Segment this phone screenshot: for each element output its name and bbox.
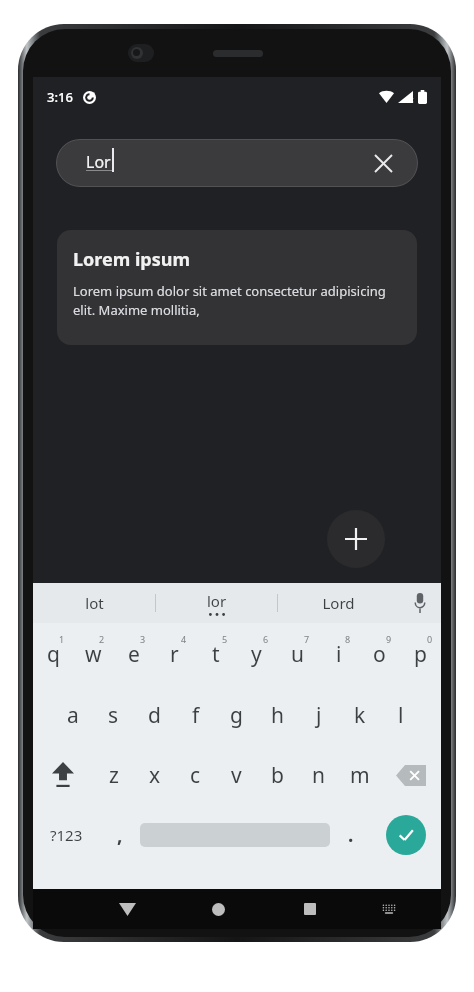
staticText: b [271,761,284,790]
staticText: f [192,701,200,730]
staticText: 1 [59,633,65,645]
staticText: Lor [86,151,111,173]
button[interactable]: f [175,685,216,745]
staticText: v [231,761,242,790]
button[interactable]: Lor [56,139,418,187]
staticText: ?123 [50,825,83,845]
button[interactable]: 4 [154,623,195,685]
button[interactable]: Voice input [399,583,441,623]
staticText: c [190,761,201,790]
staticText: . [348,822,354,848]
staticText: l [398,701,404,730]
button[interactable]: k [339,685,380,745]
button[interactable]: n [298,745,339,805]
staticText: a [67,701,79,730]
button[interactable]: 1 [33,623,73,685]
staticText: t [212,640,220,669]
button[interactable]: 0 [400,623,441,685]
staticText: e [128,640,140,669]
staticText: i [336,640,342,669]
button[interactable]: s [93,685,134,745]
staticText: d [148,701,161,730]
staticText: q [47,640,60,669]
button[interactable]: 7 [277,623,318,685]
staticText: 2 [99,633,105,645]
button[interactable]: a [52,685,93,745]
staticText: n [312,761,325,790]
button[interactable]: Lorem ipsum [57,230,417,345]
button[interactable]: h [257,685,298,745]
button[interactable]: b [257,745,298,805]
button[interactable]: , [99,805,140,865]
staticText: Lorem ipsum dolor sit amet consectetur a… [73,282,401,319]
staticText: x [149,761,161,790]
staticText: lor [207,591,227,611]
staticText: p [414,640,427,669]
button[interactable]: 6 [236,623,277,685]
button[interactable]: j [298,685,339,745]
button[interactable]: z [93,745,134,805]
button[interactable]: x [134,745,175,805]
staticText: g [230,701,243,730]
staticText: 8 [345,633,351,645]
staticText: s [108,701,119,730]
staticText: k [354,701,366,730]
staticText: u [291,640,304,669]
button[interactable]: l [380,685,421,745]
staticText: o [373,640,386,669]
button[interactable]: ?123 [33,805,99,865]
button[interactable]: Home [173,889,264,929]
button[interactable]: c [175,745,216,805]
staticText: 9 [386,633,392,645]
button[interactable]: g [216,685,257,745]
staticText: m [350,761,370,790]
button[interactable]: Recent apps [264,889,355,929]
staticText: r [170,640,179,669]
staticText: 3:16 [47,88,73,106]
button[interactable]: Shift [33,745,93,805]
button[interactable]: lot [33,583,155,623]
button[interactable]: Clear search [366,146,400,180]
button[interactable]: . [330,805,371,865]
button[interactable]: Backspace [380,745,441,805]
staticText: z [109,761,119,790]
button[interactable]: m [339,745,380,805]
staticText: 6 [263,633,269,645]
button[interactable]: 9 [359,623,400,685]
staticText: h [271,701,284,730]
staticText: 3 [140,633,146,645]
staticText: w [85,640,102,669]
button[interactable]: Switch keyboard [355,889,423,929]
staticText: j [316,701,322,730]
staticText: 0 [427,633,433,645]
button[interactable]: d [134,685,175,745]
button[interactable]: Add [327,510,385,568]
button[interactable]: lor [156,583,277,623]
staticText: 4 [181,633,187,645]
button[interactable]: 8 [318,623,359,685]
staticText: 5 [222,633,228,645]
button[interactable]: 2 [73,623,113,685]
button[interactable]: Done [386,815,426,855]
staticText: Lord [322,593,355,613]
staticText: 7 [304,633,310,645]
staticText: lot [85,593,104,613]
button[interactable]: v [216,745,257,805]
button[interactable]: 5 [195,623,236,685]
button[interactable] [140,821,330,849]
staticText: y [251,640,262,669]
button[interactable]: 3 [113,623,154,685]
button[interactable]: Back [82,889,173,929]
staticText: Lorem ipsum [73,247,191,272]
button[interactable]: Lord [278,583,399,623]
staticText: , [117,822,123,848]
